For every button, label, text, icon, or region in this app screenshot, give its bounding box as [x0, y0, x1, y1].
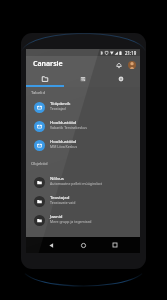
- button[interactable]: Hooldustööd: [26, 136, 140, 155]
- staticText: Teostajad: [50, 106, 66, 111]
- staticText: MM Liiva Keskus: [50, 144, 78, 149]
- staticText: Objektid: [31, 161, 48, 167]
- staticText: Vabariik Tervisekeskus: [50, 125, 87, 130]
- staticText: Tabelid: [31, 90, 46, 96]
- staticText: Hooldustööd: [50, 119, 77, 125]
- button[interactable]: Teostajad: [26, 192, 140, 211]
- staticText: Tööpäevik: [50, 100, 71, 106]
- button[interactable]: Hooldustööd: [26, 117, 140, 136]
- button[interactable]: Jaanid: [26, 211, 140, 230]
- button[interactable]: Info: [102, 72, 140, 87]
- staticText: Teostavate vaid: [50, 200, 76, 205]
- button[interactable]: Home: [76, 238, 90, 252]
- staticText: Hooldustööd: [50, 138, 77, 144]
- button[interactable]: Files: [26, 72, 64, 87]
- button[interactable]: Nõlvus: [26, 173, 140, 192]
- staticText: 21:19: [125, 50, 137, 56]
- staticText: Teostajad: [50, 194, 70, 200]
- staticText: Mere grupp ja tegemised: [50, 219, 92, 224]
- staticText: Automaatne pelleti müügirobot: [50, 181, 102, 186]
- staticText: Nõlvus: [50, 175, 64, 181]
- button[interactable]: Back: [44, 238, 58, 252]
- staticText: Canarsie: [33, 59, 63, 69]
- button[interactable]: Notifications: [113, 59, 124, 70]
- staticText: Jaanid: [50, 213, 63, 219]
- button[interactable]: Recents: [108, 238, 122, 252]
- button[interactable]: Calendar: [64, 72, 102, 87]
- button[interactable]: Account: [126, 59, 137, 70]
- button[interactable]: Tööpäevik: [26, 98, 140, 117]
